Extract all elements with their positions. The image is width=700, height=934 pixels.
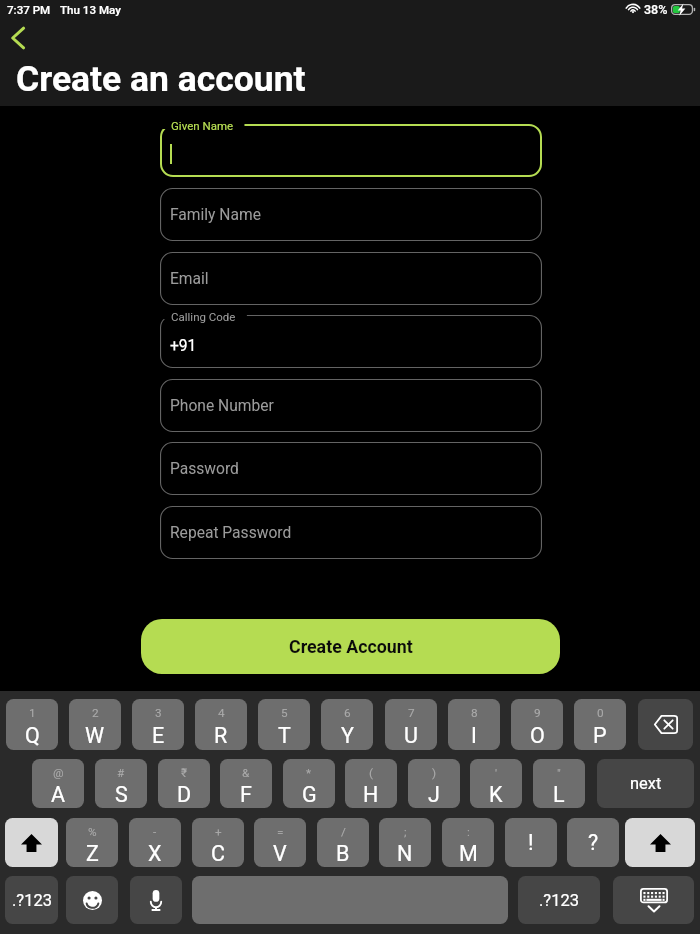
staticText: Create Account <box>289 636 413 657</box>
button[interactable]: Hide keyboard <box>613 876 694 924</box>
button[interactable]: W <box>69 699 121 750</box>
staticText: Repeat Password <box>170 524 292 542</box>
button[interactable]: Phone Number <box>160 379 542 432</box>
staticText: " <box>557 766 561 780</box>
button[interactable]: next <box>597 759 694 808</box>
staticText: X <box>148 841 162 866</box>
button[interactable]: Password <box>160 442 542 495</box>
staticText: C <box>211 841 225 866</box>
button[interactable]: U <box>385 699 437 750</box>
staticText: Phone Number <box>170 397 274 415</box>
button[interactable]: L <box>533 759 585 808</box>
button[interactable]: H <box>345 759 397 808</box>
staticText: Thu 13 May <box>60 3 121 17</box>
button[interactable]: Back <box>4 24 32 52</box>
staticText: P <box>593 723 607 748</box>
staticText: ) <box>432 766 437 780</box>
staticText: S <box>115 782 128 807</box>
button[interactable]: K <box>470 759 522 808</box>
button[interactable]: Q <box>6 699 58 750</box>
button[interactable]: S <box>95 759 147 808</box>
staticText: ! <box>528 830 534 855</box>
button[interactable]: Email <box>160 252 542 305</box>
button[interactable]: Given Name <box>160 124 542 177</box>
button[interactable]: Family Name <box>160 188 542 241</box>
button[interactable]: Shift <box>625 818 695 867</box>
button[interactable]: O <box>511 699 563 750</box>
button[interactable]: I <box>448 699 500 750</box>
staticText: F <box>240 782 252 807</box>
staticText: % <box>88 825 97 839</box>
staticText: * <box>306 766 312 780</box>
staticText: G <box>302 782 317 807</box>
button[interactable]: Repeat Password <box>160 506 542 559</box>
button[interactable]: D <box>158 759 210 808</box>
staticText: ? <box>588 830 599 855</box>
button[interactable]: Shift <box>5 818 58 867</box>
staticText: L <box>553 782 565 807</box>
staticText: ; <box>404 825 407 839</box>
staticText: .?123 <box>12 891 52 910</box>
staticText: U <box>404 723 418 748</box>
button[interactable]: N <box>379 818 431 867</box>
button[interactable]: B <box>317 818 369 867</box>
staticText: Given Name <box>171 119 234 132</box>
button[interactable]: Emoji <box>66 876 118 924</box>
button[interactable]: Voice input <box>130 876 182 924</box>
button[interactable]: ? <box>567 818 619 867</box>
staticText: Y <box>341 723 354 748</box>
staticText: H <box>363 782 379 807</box>
staticText: 38% <box>644 2 668 17</box>
staticText: 8 <box>471 706 478 720</box>
staticText: +91 <box>170 337 197 355</box>
staticText: J <box>428 782 440 807</box>
button[interactable]: Create Account <box>141 619 560 674</box>
staticText: ₹ <box>181 766 188 780</box>
staticText: = <box>277 825 284 839</box>
button[interactable]: V <box>254 818 306 867</box>
staticText: Email <box>170 270 209 288</box>
staticText: 3 <box>155 706 162 720</box>
button[interactable]: ! <box>505 818 557 867</box>
button[interactable]: Y <box>321 699 373 750</box>
button[interactable]: Space <box>192 876 508 924</box>
button[interactable]: R <box>195 699 247 750</box>
staticText: ( <box>369 766 374 780</box>
button[interactable]: A <box>32 759 84 808</box>
button[interactable]: F <box>220 759 272 808</box>
staticText: V <box>273 841 287 866</box>
staticText: 4 <box>218 706 225 720</box>
staticText: / <box>341 825 346 839</box>
staticText: T <box>278 723 291 748</box>
button[interactable]: M <box>442 818 494 867</box>
staticText: Password <box>170 460 239 478</box>
button[interactable]: J <box>408 759 460 808</box>
staticText: @ <box>53 766 64 780</box>
staticText: Q <box>25 723 40 748</box>
button[interactable]: Backspace <box>638 699 693 750</box>
staticText: A <box>51 782 66 807</box>
staticText: 9 <box>534 706 541 720</box>
staticText: next <box>630 774 662 793</box>
staticText: B <box>336 841 350 866</box>
button[interactable]: E <box>132 699 184 750</box>
staticText: 2 <box>92 706 99 720</box>
staticText: - <box>153 825 157 839</box>
staticText: Family Name <box>170 206 261 224</box>
button[interactable]: C <box>192 818 244 867</box>
staticText: N <box>397 841 413 866</box>
button[interactable]: X <box>129 818 181 867</box>
button[interactable]: P <box>574 699 626 750</box>
staticText: D <box>177 782 192 807</box>
button[interactable]: .?123 <box>518 876 600 924</box>
button[interactable]: Calling Code <box>160 315 542 368</box>
button[interactable]: T <box>258 699 310 750</box>
staticText: Create an account <box>16 58 306 100</box>
button[interactable]: Z <box>66 818 118 867</box>
staticText: + <box>215 825 222 839</box>
staticText: Z <box>86 841 99 866</box>
button[interactable]: G <box>283 759 335 808</box>
button[interactable]: .?123 <box>5 876 58 924</box>
staticText: 5 <box>281 706 288 720</box>
staticText: I <box>471 723 477 748</box>
